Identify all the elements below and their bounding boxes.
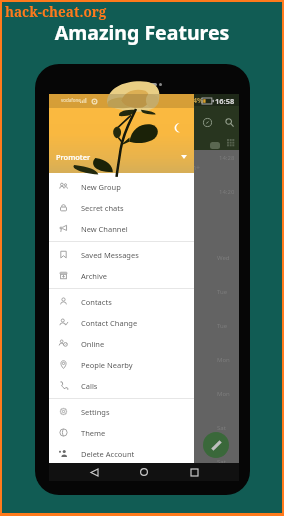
staticText: Calls [81,381,98,391]
staticText: Settings [81,407,110,417]
staticText: Wed [119,239,133,248]
staticText: Broadcast Yours [119,367,173,377]
button[interactable]: Theme [49,422,194,443]
staticText: Tue [217,288,228,296]
staticText: Broadcast Android.com+ [119,163,200,173]
staticText: Amazing Features [0,19,284,46]
button[interactable]: New message [203,432,229,458]
staticText: Contacts [81,297,112,307]
button[interactable]: People Nearby [49,354,194,375]
staticText: People Nearby [81,360,133,370]
button[interactable]: Secret chats [49,197,194,218]
staticText: New Group [81,182,121,192]
button[interactable]: Search [218,111,240,133]
staticText: Or... [119,171,131,180]
staticText: Wed [217,254,230,262]
button[interactable]: New Group [49,176,194,197]
staticText: Mon [217,356,230,364]
staticText: New Channel [81,224,128,234]
button[interactable]: Discover [196,111,218,133]
button[interactable]: Expand accounts [177,150,191,164]
staticText: You [119,231,132,241]
button[interactable]: Archive [49,265,194,286]
staticText: Contact Change [81,318,138,328]
button[interactable]: Contact Change [49,312,194,333]
staticText: Saved Messages [81,250,139,260]
staticText: Theme [81,428,106,438]
button[interactable]: Settings [49,401,194,422]
button[interactable]: Home [129,463,159,481]
button[interactable]: Delete Account [49,443,194,464]
staticText: 14% [189,96,204,106]
staticText: Tue [217,322,228,330]
staticText: Delete Account [81,449,135,459]
staticText: Online [81,339,105,349]
button[interactable]: Online [49,333,194,354]
button[interactable]: Saved Messages [49,244,194,265]
staticText: 14:28 [219,154,235,162]
button[interactable]: Calls [49,375,194,396]
staticText: Mon [217,390,230,398]
button[interactable]: New Channel [49,218,194,239]
button[interactable]: Recents [179,463,209,481]
staticText: 14:20 [219,188,235,196]
staticText: Sat [217,458,226,466]
button[interactable]: Contacts [49,291,194,312]
staticText: 16:58 [215,96,235,106]
staticText: Promoter [56,152,91,162]
staticText: Secret chats [81,203,124,213]
staticText: vodafone [61,97,81,103]
staticText: hack-cheat.org [5,3,107,21]
staticText: Archive [81,271,107,281]
staticText: Sat [217,424,226,432]
button[interactable]: Back [79,463,109,481]
